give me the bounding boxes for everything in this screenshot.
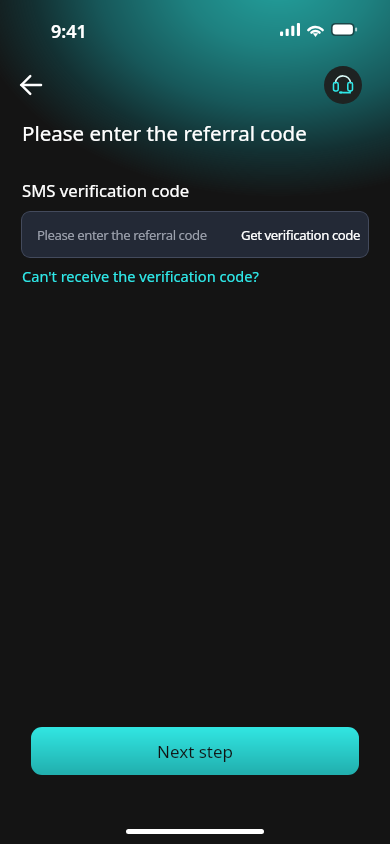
button[interactable]: Back <box>9 63 53 107</box>
staticText: Next step <box>157 740 234 763</box>
staticText: Please enter the referral code <box>22 119 307 147</box>
button[interactable]: Get verification code <box>241 226 361 244</box>
button[interactable]: Can't receive the verification code? <box>22 266 259 286</box>
staticText: SMS verification code <box>22 179 190 202</box>
staticText: 9:41 <box>51 19 87 44</box>
button[interactable]: Customer service <box>324 66 362 104</box>
button[interactable]: Next step <box>31 727 359 775</box>
staticText: Please enter the referral code <box>37 226 207 244</box>
